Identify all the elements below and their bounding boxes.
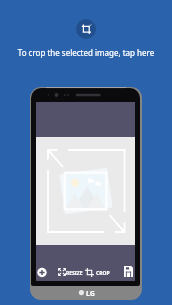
button[interactable]: Crop (76, 19, 96, 39)
button[interactable]: RESIZE (57, 266, 85, 279)
staticText: RESIZE (66, 270, 83, 277)
button[interactable]: Add (37, 267, 47, 277)
staticText: CROP (96, 270, 110, 277)
button[interactable]: CROP (85, 266, 109, 279)
button[interactable]: Save (124, 266, 133, 277)
staticText: To crop the selected image, tap here (0, 47, 172, 58)
staticText: LG (86, 289, 95, 299)
